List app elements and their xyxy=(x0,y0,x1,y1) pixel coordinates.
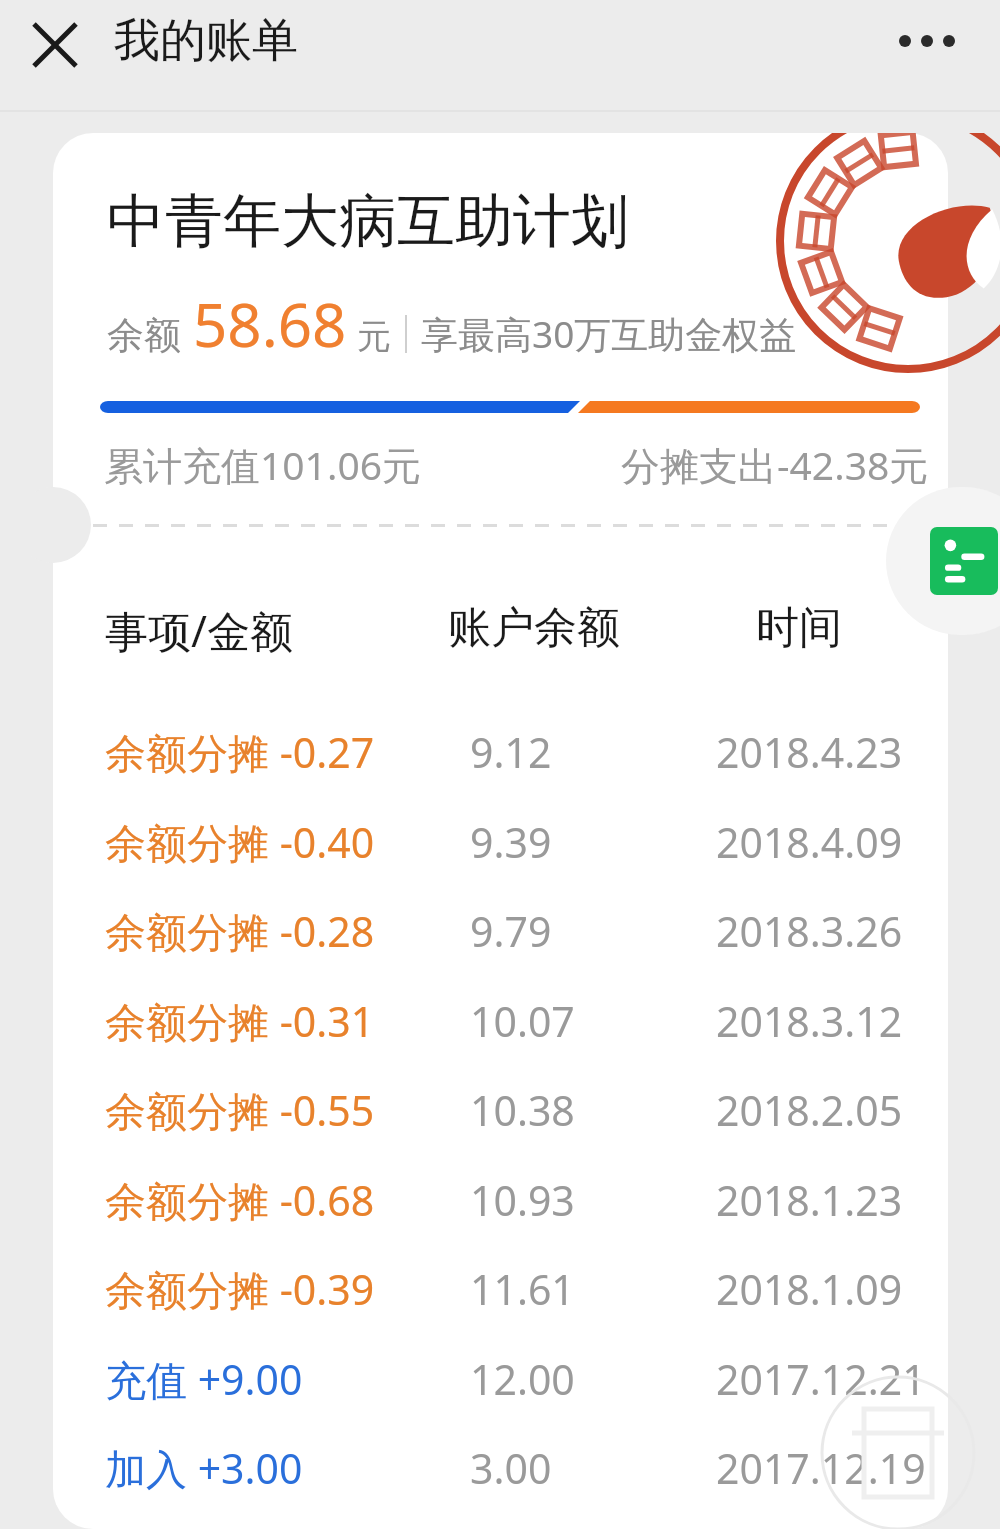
button[interactable]: 加入 +3.00 xyxy=(53,1435,948,1524)
staticText: 余额分摊 -0.55 xyxy=(105,1082,375,1138)
staticText: 事项/金额 xyxy=(105,601,293,660)
staticText: 2018.1.09 xyxy=(716,1261,903,1317)
staticText: 12.00 xyxy=(470,1351,575,1407)
staticText: 余额分摊 -0.31 xyxy=(105,993,375,1049)
button[interactable]: 余额分摊 -0.27 xyxy=(53,719,948,808)
staticText: 2017.12.21 xyxy=(716,1351,926,1407)
button[interactable]: Bill details xyxy=(886,487,1000,635)
staticText: 10.07 xyxy=(470,993,575,1049)
staticText: 58.68 xyxy=(193,283,347,365)
staticText: 2018.4.23 xyxy=(716,724,903,780)
button[interactable]: 余额分摊 -0.55 xyxy=(53,1077,948,1166)
button[interactable]: 余额分摊 -0.28 xyxy=(53,898,948,987)
staticText: 9.79 xyxy=(470,903,552,959)
staticText: 11.61 xyxy=(470,1261,575,1317)
staticText: 余额分摊 -0.68 xyxy=(105,1172,375,1228)
staticText: 余额分摊 -0.40 xyxy=(105,814,375,870)
button[interactable]: 余额分摊 -0.40 xyxy=(53,809,948,898)
button[interactable]: Close xyxy=(18,8,92,82)
staticText: 元 xyxy=(357,315,391,358)
staticText: 2018.1.23 xyxy=(716,1172,903,1228)
button[interactable]: More options xyxy=(886,8,968,82)
staticText: 3.00 xyxy=(470,1440,552,1496)
staticText: 余额分摊 -0.27 xyxy=(105,724,375,780)
staticText: 2018.3.26 xyxy=(716,903,903,959)
staticText: 累计充值101.06元 xyxy=(104,438,421,491)
staticText: 余额 xyxy=(107,312,181,359)
button[interactable]: 余额分摊 -0.31 xyxy=(53,988,948,1077)
staticText: 充值 +9.00 xyxy=(105,1351,303,1407)
staticText: 余额分摊 -0.28 xyxy=(105,903,375,959)
button[interactable]: 充值 +9.00 xyxy=(53,1346,948,1435)
staticText: 账户余额 xyxy=(448,601,620,655)
staticText: 余额分摊 -0.39 xyxy=(105,1261,375,1317)
staticText: 9.12 xyxy=(470,724,552,780)
staticText: 2018.4.09 xyxy=(716,814,903,870)
staticText: 2018.3.12 xyxy=(716,993,903,1049)
button[interactable]: 余额分摊 -0.39 xyxy=(53,1256,948,1345)
staticText: 9.39 xyxy=(470,814,552,870)
staticText: 10.38 xyxy=(470,1082,575,1138)
staticText: 2017.12.19 xyxy=(716,1440,926,1496)
staticText: 加入 +3.00 xyxy=(105,1440,303,1496)
staticText: 分摊支出-42.38元 xyxy=(621,438,929,491)
staticText: 时间 xyxy=(756,601,842,655)
staticText: 中青年大病互助计划 xyxy=(107,185,629,258)
staticText: 享最高30万互助金权益 xyxy=(421,308,797,359)
staticText: 我的账单 xyxy=(114,12,298,70)
button[interactable]: 余额分摊 -0.68 xyxy=(53,1167,948,1256)
staticText: 10.93 xyxy=(470,1172,575,1228)
staticText: 2018.2.05 xyxy=(716,1082,903,1138)
